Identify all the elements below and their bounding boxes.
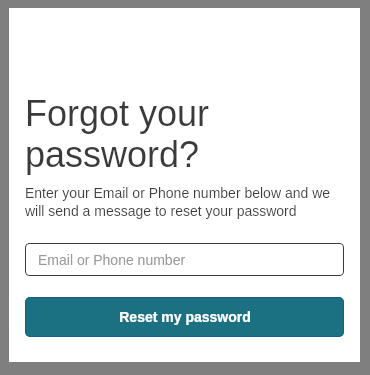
- button[interactable]: Reset my password: [25, 297, 344, 337]
- button[interactable]: Email or Phone number input field: [25, 243, 344, 276]
- staticText: Email or Phone number: [38, 252, 186, 268]
- staticText: Reset my password: [119, 309, 251, 325]
- staticText: Enter your Email or Phone number below a…: [25, 185, 344, 219]
- staticText: Forgot your password?: [25, 93, 210, 174]
